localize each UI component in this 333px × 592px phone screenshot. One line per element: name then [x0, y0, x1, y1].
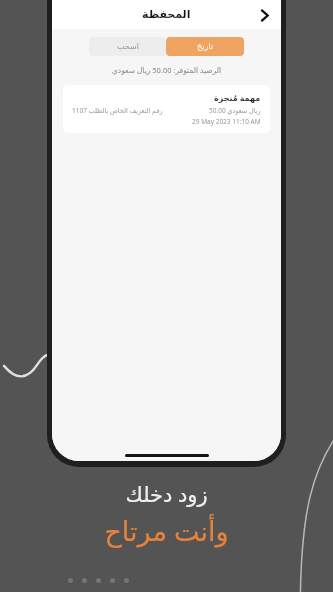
button[interactable]: اسحب: [89, 37, 166, 56]
staticText: زود دخلك: [125, 480, 208, 509]
button[interactable]: مهمة مُنجزة: [63, 85, 270, 133]
staticText: رقم التعريف الخاص بالطلب 1107: [72, 106, 163, 115]
staticText: ريال سعودي 50.00: [209, 106, 261, 115]
staticText: وأنت مرتاح: [104, 512, 229, 549]
staticText: تاريخ: [197, 42, 213, 51]
staticText: 29 May 2023 11:10 AM: [192, 117, 261, 126]
button[interactable]: تاريخ: [166, 37, 244, 56]
staticText: الرصيد المتوفر: 50.00 ريال سعودي: [52, 65, 281, 75]
staticText: المحفظة: [142, 8, 191, 21]
staticText: مهمة مُنجزة: [214, 92, 261, 103]
staticText: اسحب: [117, 42, 139, 51]
button[interactable]: رجوع: [252, 3, 276, 27]
